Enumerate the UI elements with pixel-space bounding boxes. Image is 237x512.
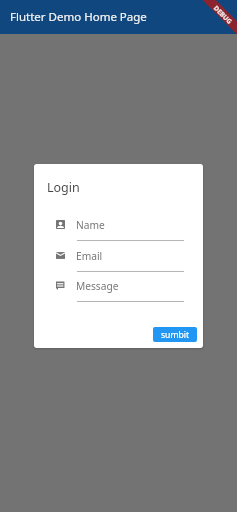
staticText: DEBUG xyxy=(212,3,234,26)
button[interactable]: Email xyxy=(56,246,184,274)
button[interactable]: Name xyxy=(56,215,184,243)
staticText: Flutter Demo Home Page xyxy=(10,9,147,25)
staticText: Login xyxy=(47,179,80,196)
staticText: Email xyxy=(76,249,103,263)
staticText: Message xyxy=(76,279,119,293)
staticText: Name xyxy=(76,218,105,232)
button[interactable]: sumbit xyxy=(153,327,197,342)
staticText: sumbit xyxy=(161,329,190,341)
button[interactable]: Message xyxy=(56,276,184,304)
